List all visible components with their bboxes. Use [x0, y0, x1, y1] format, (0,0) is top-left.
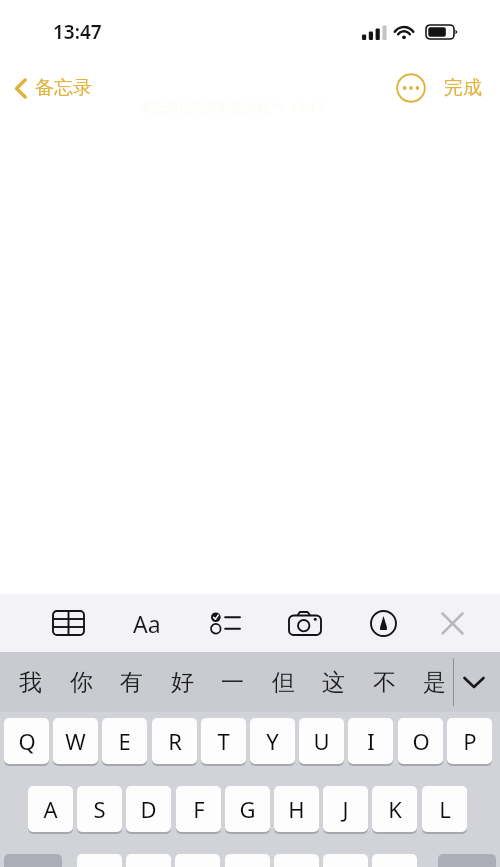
button[interactable]: 我	[6, 652, 54, 712]
button[interactable]: 备忘录	[8, 72, 98, 104]
button[interactable]: F	[176, 786, 221, 832]
staticText: 完成	[444, 76, 482, 100]
button[interactable]: 关闭键盘	[426, 597, 478, 649]
button[interactable]: I	[348, 718, 393, 764]
button[interactable]: 格式	[121, 597, 173, 649]
button[interactable]: G	[225, 786, 270, 832]
button[interactable]: 不	[360, 652, 408, 712]
button[interactable]: A	[28, 786, 73, 832]
button[interactable]: 相机	[279, 597, 331, 649]
staticText: F	[193, 794, 205, 824]
button[interactable]: K	[372, 786, 417, 832]
staticText: G	[239, 794, 256, 824]
staticText: O	[412, 726, 430, 756]
button[interactable]: 有	[107, 652, 155, 712]
button[interactable]: 字母键	[323, 854, 368, 867]
button[interactable]: 完成	[440, 72, 486, 104]
button[interactable]: 更多选项	[394, 71, 428, 105]
staticText: 一	[221, 668, 244, 697]
staticText: 这	[322, 668, 345, 697]
button[interactable]: 字母键	[126, 854, 171, 867]
button[interactable]: D	[126, 786, 171, 832]
staticText: H	[288, 794, 305, 824]
button[interactable]: L	[422, 786, 467, 832]
staticText: E	[118, 726, 131, 756]
staticText: T	[217, 726, 230, 756]
staticText: P	[463, 726, 477, 756]
button[interactable]: Shift	[4, 854, 62, 867]
button[interactable]: 字母键	[274, 854, 319, 867]
staticText: J	[342, 794, 349, 824]
button[interactable]: 你	[57, 652, 105, 712]
button[interactable]: 字母键	[77, 854, 122, 867]
staticText: 备忘录已同步到您的账户 13:47	[140, 98, 323, 116]
staticText: L	[439, 794, 451, 824]
staticText: Q	[18, 726, 36, 756]
button[interactable]: 但	[259, 652, 307, 712]
button[interactable]: 字母键	[372, 854, 417, 867]
button[interactable]: W	[53, 718, 98, 764]
staticText: 备忘录	[35, 76, 92, 100]
staticText: D	[140, 794, 157, 824]
button[interactable]: Q	[4, 718, 49, 764]
button[interactable]: 标记	[357, 597, 409, 649]
button[interactable]: E	[102, 718, 147, 764]
staticText: 好	[171, 668, 194, 697]
button[interactable]: 是	[410, 652, 458, 712]
button[interactable]: O	[398, 718, 443, 764]
staticText: W	[65, 726, 86, 756]
button[interactable]: Y	[250, 718, 295, 764]
button[interactable]: 字母键	[175, 854, 220, 867]
button[interactable]: 清单	[199, 597, 251, 649]
button[interactable]: 收起候选词	[452, 660, 496, 704]
staticText: S	[93, 794, 106, 824]
staticText: 是	[423, 668, 446, 697]
button[interactable]: R	[152, 718, 197, 764]
button[interactable]: T	[201, 718, 246, 764]
staticText: Y	[266, 726, 279, 756]
button[interactable]: 字母键	[225, 854, 270, 867]
staticText: A	[43, 794, 58, 824]
staticText: 13:47	[53, 19, 102, 45]
staticText: 有	[120, 668, 143, 697]
staticText: 你	[70, 668, 93, 697]
staticText: 不	[373, 668, 396, 697]
button[interactable]: J	[323, 786, 368, 832]
staticText: Aa	[133, 608, 161, 639]
button[interactable]: 一	[208, 652, 256, 712]
staticText: K	[388, 794, 402, 824]
button[interactable]: P	[447, 718, 492, 764]
button[interactable]: 表格	[42, 597, 94, 649]
button[interactable]: H	[274, 786, 319, 832]
staticText: 我	[19, 668, 42, 697]
button[interactable]: S	[77, 786, 122, 832]
staticText: R	[168, 726, 182, 756]
staticText: I	[367, 726, 375, 756]
button[interactable]: 这	[309, 652, 357, 712]
button[interactable]: 删除	[438, 854, 496, 867]
staticText: U	[313, 726, 330, 756]
button[interactable]: 好	[158, 652, 206, 712]
staticText: 但	[272, 668, 295, 697]
button[interactable]: U	[299, 718, 344, 764]
